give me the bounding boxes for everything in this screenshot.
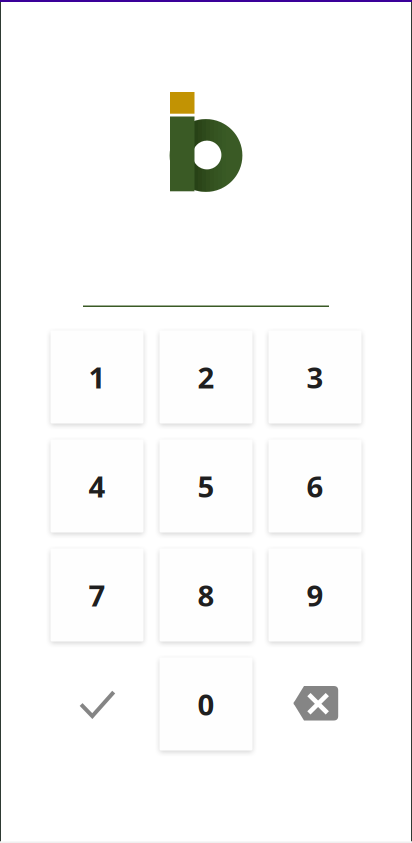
button[interactable]: Confirm (50, 657, 143, 750)
staticText: 1 (88, 357, 105, 396)
staticText: 9 (306, 575, 323, 614)
button[interactable]: 7 (50, 548, 143, 641)
button[interactable]: 9 (268, 548, 361, 641)
button[interactable]: 8 (159, 548, 252, 641)
staticText: 2 (197, 357, 214, 396)
staticText: 0 (197, 684, 214, 723)
button[interactable]: 1 (50, 330, 143, 423)
button[interactable]: 4 (50, 439, 143, 532)
staticText: 4 (88, 466, 105, 505)
staticText: 3 (306, 357, 323, 396)
staticText: 8 (197, 575, 214, 614)
button[interactable]: 0 (159, 657, 252, 750)
button[interactable]: 6 (268, 439, 361, 532)
staticText: 5 (197, 466, 214, 505)
staticText: 7 (88, 575, 105, 614)
button[interactable]: 5 (159, 439, 252, 532)
button[interactable]: Delete (268, 657, 361, 750)
button[interactable]: 3 (268, 330, 361, 423)
button[interactable]: 2 (159, 330, 252, 423)
staticText: 6 (306, 466, 323, 505)
